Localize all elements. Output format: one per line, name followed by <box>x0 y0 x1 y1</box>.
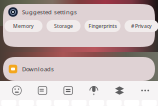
button[interactable]: Voice input <box>81 85 107 96</box>
staticText: Storage <box>54 22 73 29</box>
staticText: Fingerprints <box>88 22 116 29</box>
button[interactable]: Emoji <box>4 85 30 96</box>
button[interactable]: Fingerprints <box>84 20 120 32</box>
button[interactable]: More <box>132 85 158 96</box>
staticText: Downloads <box>22 65 54 73</box>
button[interactable]: Memory <box>4 20 42 32</box>
staticText: Suggested settings <box>22 8 77 16</box>
button[interactable]: GIF <box>55 85 81 96</box>
button[interactable]: # Privacy <box>124 20 158 32</box>
button[interactable]: Stickers <box>30 85 55 96</box>
button[interactable]: Themes <box>107 85 132 96</box>
staticText: # Privacy <box>131 22 152 29</box>
button[interactable]: Storage <box>46 20 80 32</box>
staticText: Memory <box>13 22 34 29</box>
